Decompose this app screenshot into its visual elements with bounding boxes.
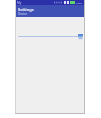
staticText: Settings: [18, 7, 34, 12]
staticText: My: [17, 1, 22, 5]
staticText: 100%: [76, 1, 83, 4]
button[interactable]: Settings: [15, 5, 85, 17]
staticText: Device: [18, 12, 28, 16]
button[interactable]: Adjust value: [15, 32, 85, 41]
